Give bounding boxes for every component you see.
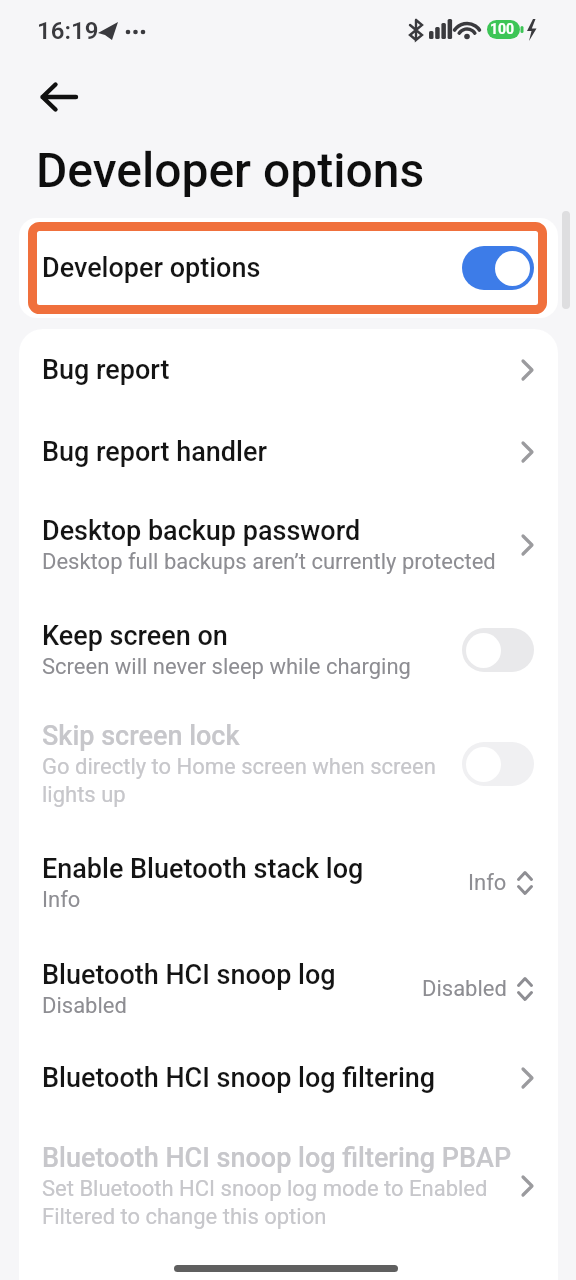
staticText: Desktop full backups aren’t currently pr… (42, 549, 496, 575)
button[interactable]: Enable Bluetooth stack log (19, 824, 558, 942)
staticText: Bluetooth HCI snoop log filtering PBAP (42, 1142, 512, 1174)
button[interactable] (462, 628, 534, 672)
button[interactable]: Bluetooth HCI snoop log filtering (19, 1036, 558, 1120)
staticText: Bug report handler (42, 436, 267, 468)
staticText: Filtered to change this option (42, 1204, 327, 1230)
staticText: Developer options (42, 252, 261, 284)
button[interactable]: Bug report handler (19, 411, 558, 493)
staticText: Enable Bluetooth stack log (42, 853, 364, 885)
staticText: Bug report (42, 354, 170, 386)
staticText: Disabled (42, 993, 127, 1019)
staticText: Info (42, 887, 81, 913)
staticText: 100 (490, 21, 515, 37)
button[interactable]: Skip screen lock (19, 704, 558, 824)
button[interactable]: Developer options (19, 218, 558, 318)
staticText: Screen will never sleep while charging (42, 654, 411, 680)
button[interactable]: Desktop backup password (19, 493, 558, 596)
button[interactable]: Bug report (19, 329, 558, 411)
staticText: Info (468, 870, 507, 896)
staticText: Bluetooth HCI snoop log (42, 959, 336, 991)
staticText: Go directly to Home screen when screen (42, 754, 436, 780)
staticText: Set Bluetooth HCI snoop log mode to Enab… (42, 1176, 488, 1202)
button[interactable]: Keep screen on (19, 596, 558, 704)
button[interactable] (462, 742, 534, 786)
button[interactable]: Bluetooth HCI snoop log filtering PBAP (19, 1120, 558, 1252)
staticText: Developer options (36, 142, 425, 198)
staticText: Keep screen on (42, 620, 228, 652)
button[interactable] (42, 83, 78, 111)
button[interactable]: Bluetooth HCI snoop log (19, 942, 558, 1036)
staticText: Bluetooth HCI snoop log filtering (42, 1062, 436, 1094)
staticText: 16:19 (37, 17, 99, 45)
button[interactable] (462, 246, 534, 290)
staticText: Desktop backup password (42, 515, 361, 547)
staticText: Skip screen lock (42, 720, 240, 752)
staticText: Disabled (422, 976, 507, 1002)
staticText: lights up (42, 782, 126, 808)
